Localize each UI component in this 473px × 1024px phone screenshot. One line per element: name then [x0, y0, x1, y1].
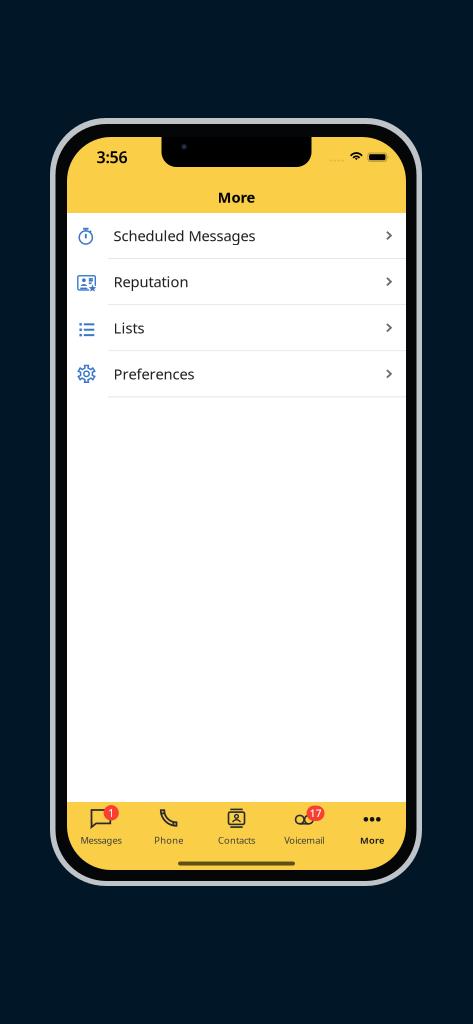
staticText: 1 — [108, 806, 114, 820]
button[interactable]: 17 — [270, 808, 338, 848]
button[interactable]: Lists — [67, 305, 406, 351]
button[interactable]: 1 — [67, 808, 135, 848]
button[interactable]: Contacts — [203, 808, 270, 848]
staticText: Phone — [154, 834, 183, 846]
staticText: 17 — [309, 806, 321, 820]
staticText: Messages — [80, 834, 121, 846]
staticText: More — [360, 834, 384, 846]
button[interactable]: Reputation — [67, 259, 406, 305]
button[interactable]: Scheduled Messages — [67, 213, 406, 259]
staticText: More — [217, 187, 255, 207]
staticText: 3:56 — [96, 146, 127, 168]
staticText: Reputation — [113, 272, 188, 291]
staticText: Preferences — [113, 364, 194, 384]
button[interactable]: More — [338, 808, 406, 848]
staticText: Lists — [113, 318, 144, 337]
button[interactable]: Preferences — [67, 351, 406, 397]
staticText: Scheduled Messages — [113, 226, 255, 245]
staticText: Voicemail — [284, 834, 324, 846]
staticText: Contacts — [218, 834, 255, 846]
button[interactable]: Phone — [135, 808, 203, 848]
